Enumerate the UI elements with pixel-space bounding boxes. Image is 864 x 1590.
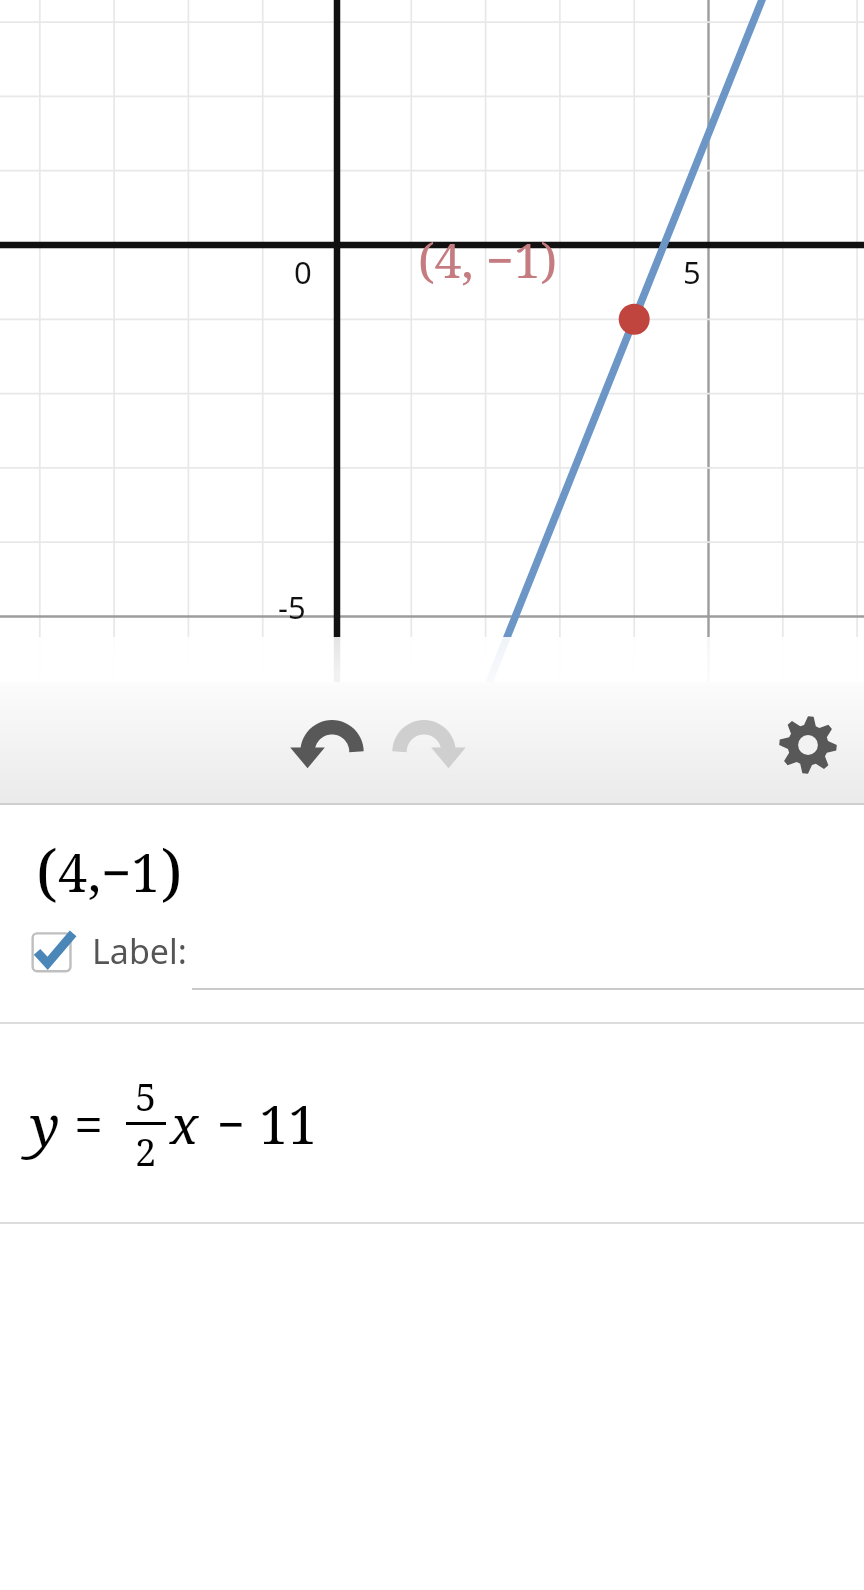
staticText: − [217,1091,245,1156]
staticText: 5 [135,1070,157,1122]
staticText: y [30,1086,60,1162]
staticText: 5 [683,251,701,293]
staticText: = [74,1088,104,1159]
button[interactable]: Undo [296,710,368,782]
staticText: 4 [58,836,88,907]
button[interactable]: Redo [388,710,460,782]
button[interactable]: Label: [30,928,187,974]
button[interactable]: ( [0,805,864,922]
staticText: (4, −1) [418,227,558,292]
button[interactable]: y [0,1024,864,1222]
staticText: x [170,1088,199,1159]
staticText: -5 [278,586,306,628]
staticText: ( [36,829,58,913]
staticText: 11 [259,1088,318,1159]
button[interactable]: Settings [771,708,845,782]
staticText: 0 [294,251,312,293]
staticText: 2 [135,1125,157,1177]
staticText: ,−1 [88,836,161,907]
staticText: Label: [92,928,187,974]
staticText: ) [161,829,183,913]
